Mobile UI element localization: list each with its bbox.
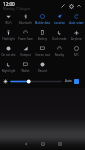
button[interactable]: Settings bbox=[67, 2, 75, 10]
staticText: Screen cast bbox=[34, 53, 51, 57]
staticText: Mobile data bbox=[34, 21, 51, 25]
staticText: Wi-Fi bbox=[0, 21, 17, 25]
staticText: Auto rotate bbox=[68, 21, 85, 25]
button[interactable]: Mobile data bbox=[34, 12, 51, 28]
button[interactable]: Auto rotate bbox=[68, 12, 85, 28]
button[interactable]: Nearby bbox=[51, 44, 68, 60]
button[interactable]: Recents bbox=[54, 138, 65, 149]
staticText: Night light bbox=[0, 69, 17, 73]
button[interactable]: Auto brightness bbox=[74, 79, 79, 84]
button[interactable]: Back bbox=[20, 138, 31, 149]
staticText: Power Save bbox=[17, 37, 34, 41]
staticText: Auto bbox=[65, 79, 72, 83]
staticText: Nearby bbox=[51, 53, 68, 57]
button[interactable]: Flashlight bbox=[0, 28, 17, 44]
staticText: Flashlight bbox=[0, 37, 17, 41]
staticText: Airplane bbox=[68, 37, 85, 41]
button[interactable]: Wallet bbox=[17, 60, 34, 76]
staticText: Location bbox=[51, 21, 68, 25]
staticText: Monday, 11 August bbox=[3, 7, 31, 11]
staticText: Record bbox=[34, 69, 51, 73]
button[interactable]: Hotspot bbox=[17, 44, 34, 60]
button[interactable]: Screen cast bbox=[34, 44, 51, 60]
staticText: Hotspot bbox=[17, 53, 34, 57]
button[interactable]: Location bbox=[51, 12, 68, 28]
button[interactable]: Do not dist bbox=[0, 44, 17, 60]
staticText: NFC bbox=[68, 53, 85, 57]
button[interactable]: Record bbox=[34, 60, 51, 76]
button[interactable]: Power Save bbox=[17, 28, 34, 44]
staticText: Battery bbox=[34, 37, 51, 41]
button[interactable]: Dark mode bbox=[51, 28, 68, 44]
button[interactable]: Airplane bbox=[68, 28, 85, 44]
staticText: Wallet bbox=[17, 69, 34, 73]
button[interactable]: Home bbox=[37, 138, 48, 149]
button[interactable] bbox=[10, 79, 62, 84]
button[interactable]: Night light bbox=[0, 60, 17, 76]
button[interactable]: NFC bbox=[68, 44, 85, 60]
staticText: Dark mode bbox=[51, 37, 68, 41]
button[interactable]: Battery bbox=[34, 28, 51, 44]
button[interactable]: Wi-Fi bbox=[0, 12, 17, 28]
button[interactable]: Collapse bbox=[75, 2, 83, 10]
staticText: Do not dist bbox=[0, 53, 17, 57]
button[interactable]: Bluetooth bbox=[17, 12, 34, 28]
staticText: 12:00 bbox=[3, 1, 15, 7]
staticText: Bluetooth bbox=[17, 21, 34, 25]
button[interactable]: Edit bbox=[59, 2, 67, 10]
